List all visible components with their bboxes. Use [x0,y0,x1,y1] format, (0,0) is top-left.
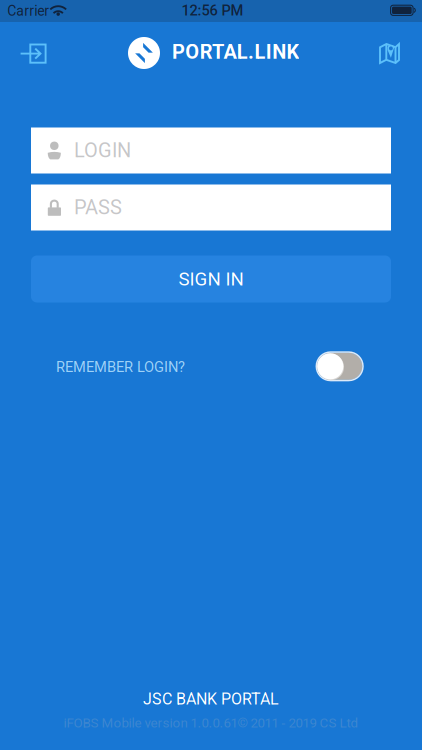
staticText: 12:56 PM [181,2,243,19]
button[interactable]: Remember login [316,352,363,381]
button[interactable]: LOGIN [31,127,391,173]
button[interactable]: PASS [31,184,391,230]
staticText: PASS [74,196,122,219]
staticText: REMEMBER LOGIN? [56,358,185,376]
staticText: SIGN IN [178,268,243,290]
button[interactable]: Map [379,43,400,64]
staticText: PORTAL.LINK [172,40,299,64]
staticText: JSC BANK PORTAL [143,690,279,708]
button[interactable]: Sign in [20,43,47,64]
staticText: Carrier [7,3,49,19]
staticText: iFOBS Mobile version 1.0.0.61© 2011 - 20… [63,715,358,731]
staticText: LOGIN [74,139,131,162]
button[interactable]: SIGN IN [31,255,391,302]
